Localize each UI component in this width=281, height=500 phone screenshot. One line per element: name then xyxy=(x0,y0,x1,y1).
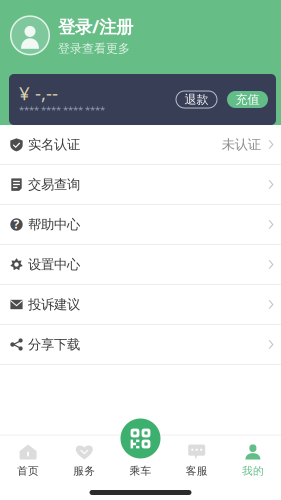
staticText: 交易查询 xyxy=(28,176,80,193)
button[interactable]: 设置中心 xyxy=(0,245,281,285)
staticText: 充值 xyxy=(235,92,259,107)
staticText: ? xyxy=(13,216,19,232)
staticText: 投诉建议 xyxy=(28,296,80,313)
staticText: 客服 xyxy=(186,464,208,478)
staticText: 未认证 xyxy=(222,136,261,153)
button[interactable]: 实名认证 xyxy=(0,125,281,165)
staticText: 乘车 xyxy=(129,464,151,478)
button[interactable]: Profile photo xyxy=(10,15,50,55)
button[interactable]: 乘车 xyxy=(120,418,160,458)
staticText: 服务 xyxy=(73,464,95,478)
staticText: 首页 xyxy=(17,464,39,478)
button[interactable]: 我的 xyxy=(225,435,281,487)
staticText: 登录/注册 xyxy=(58,15,133,38)
button[interactable]: 退款 xyxy=(176,91,217,108)
staticText: ¥ -,-- xyxy=(19,81,58,105)
button[interactable]: 乘车 xyxy=(112,435,169,487)
button[interactable]: 投诉建议 xyxy=(0,285,281,325)
staticText: 设置中心 xyxy=(28,256,80,273)
staticText: 帮助中心 xyxy=(28,216,80,233)
staticText: **** **** **** **** xyxy=(19,104,105,116)
button[interactable]: 充值 xyxy=(227,91,268,108)
button[interactable]: 分享下载 xyxy=(0,325,281,365)
button[interactable]: 客服 xyxy=(169,435,225,487)
button[interactable]: 服务 xyxy=(56,435,112,487)
button[interactable]: 交易查询 xyxy=(0,165,281,205)
staticText: 登录查看更多 xyxy=(58,41,130,56)
staticText: 退款 xyxy=(184,92,208,107)
staticText: 分享下载 xyxy=(28,336,80,353)
button[interactable]: ? xyxy=(0,205,281,245)
button[interactable]: 首页 xyxy=(0,435,56,487)
staticText: 实名认证 xyxy=(28,136,80,153)
staticText: 我的 xyxy=(242,464,264,478)
